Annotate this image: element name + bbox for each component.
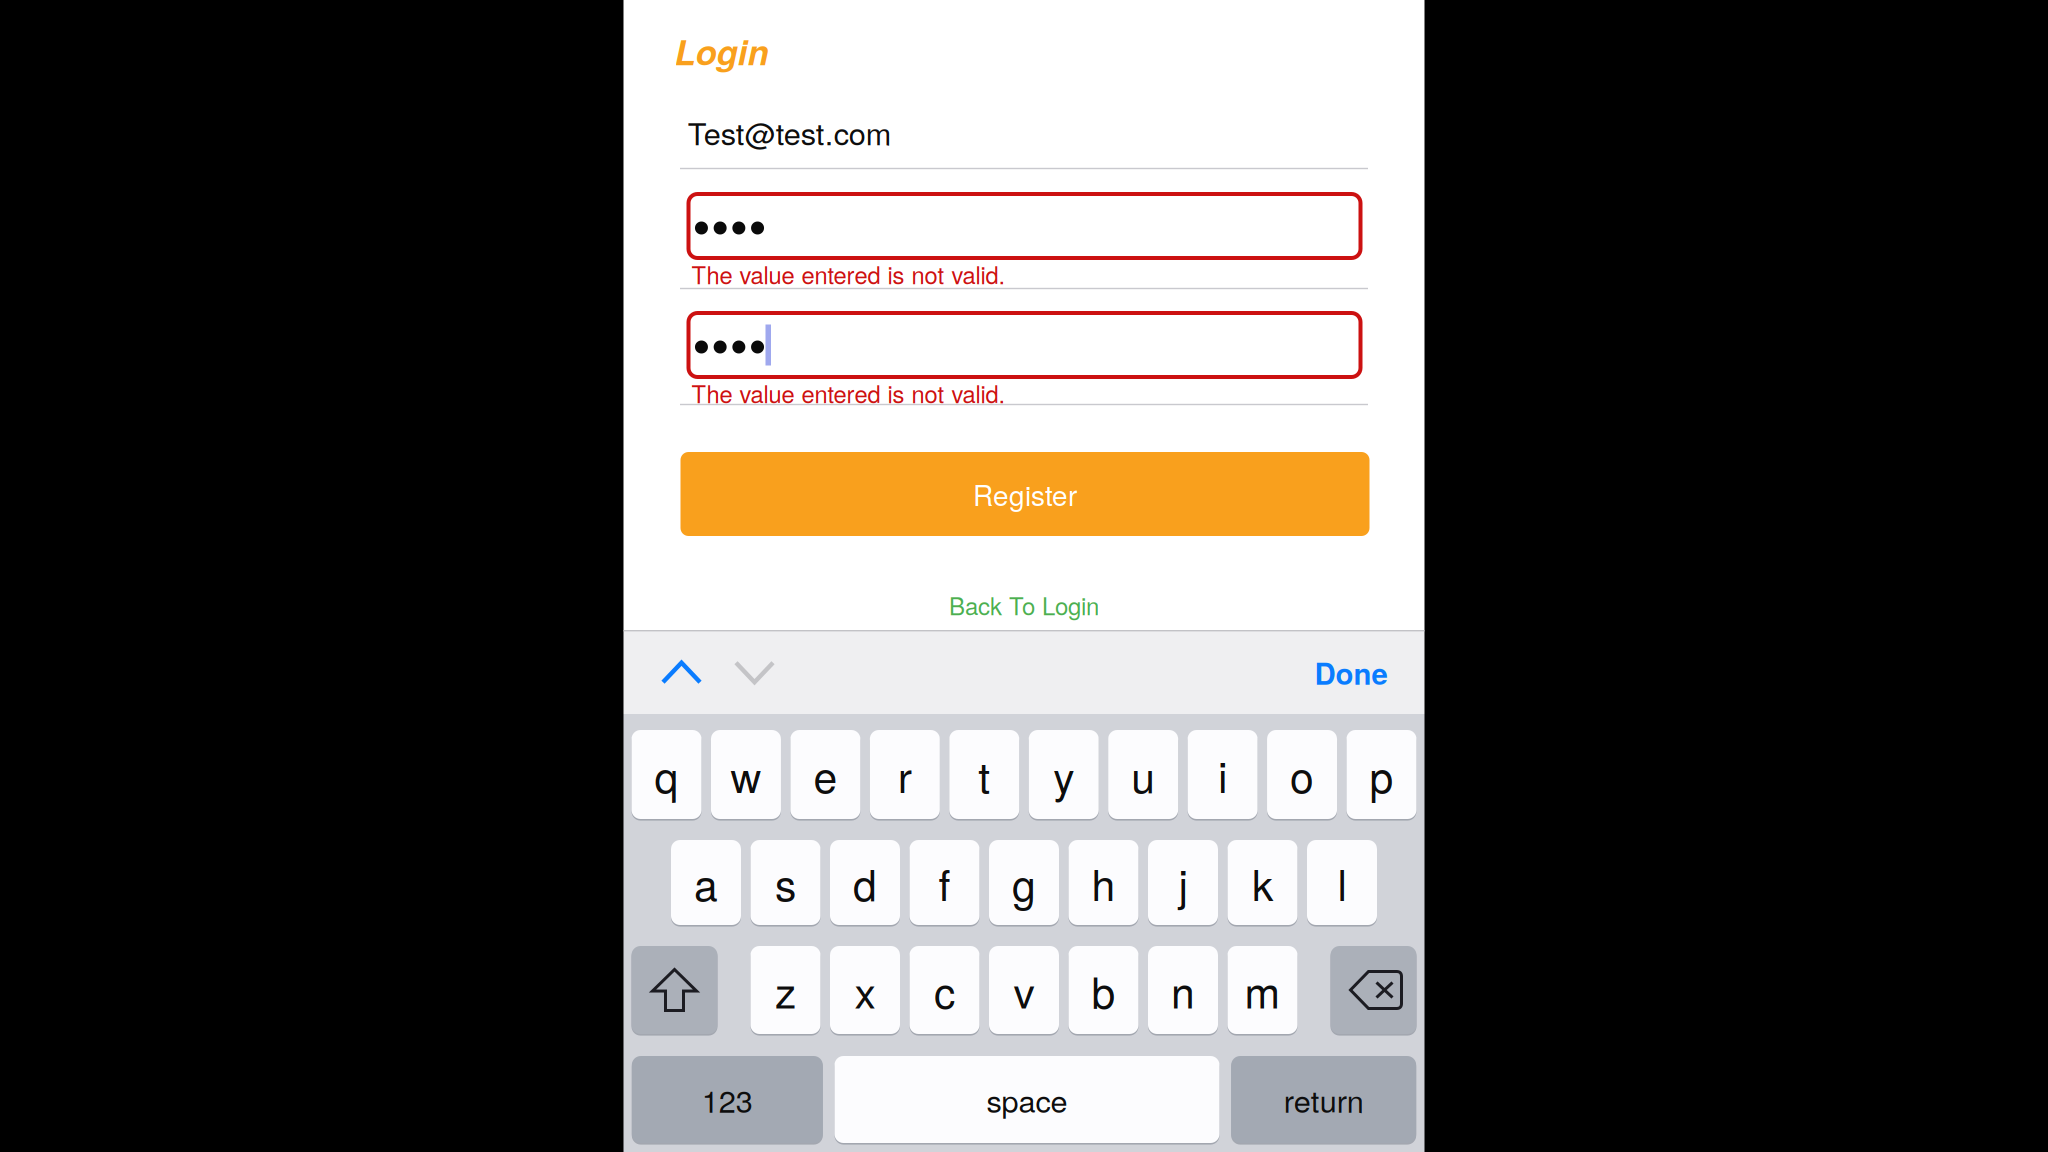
staticText: e [813, 744, 837, 805]
button[interactable]: u [1108, 730, 1178, 819]
button[interactable]: return [1231, 1056, 1416, 1143]
staticText: c [934, 959, 955, 1021]
button[interactable]: v [989, 946, 1059, 1034]
button[interactable]: h [1068, 840, 1138, 925]
staticText: 123 [702, 1077, 753, 1121]
staticText: i [1218, 744, 1227, 805]
staticText: The value entered is not valid. [691, 257, 1005, 291]
button[interactable]: space [834, 1056, 1219, 1143]
staticText: space [986, 1077, 1067, 1121]
button[interactable]: n [1148, 946, 1218, 1034]
staticText: h [1091, 852, 1115, 913]
staticText: v [1013, 959, 1034, 1021]
button[interactable]: w [711, 730, 781, 819]
button[interactable]: 123 [632, 1056, 823, 1143]
staticText: Done [1314, 652, 1387, 694]
button[interactable]: m [1227, 946, 1297, 1034]
staticText: q [654, 744, 678, 805]
button[interactable]: a [671, 840, 741, 925]
staticText: z [775, 959, 796, 1021]
button[interactable]: Email address [672, 110, 1376, 154]
staticText: w [730, 744, 761, 805]
button[interactable]: Back To Login [623, 583, 1424, 627]
staticText: The value entered is not valid. [691, 376, 1005, 410]
button[interactable]: Delete [1330, 946, 1416, 1034]
staticText: Login [674, 26, 768, 76]
staticText: Test@test.com [688, 110, 892, 154]
staticText: n [1171, 959, 1195, 1021]
button[interactable]: Password [688, 194, 1360, 258]
button[interactable]: z [750, 946, 820, 1034]
button[interactable]: t [949, 730, 1019, 819]
staticText: g [1012, 852, 1036, 913]
staticText: o [1290, 744, 1314, 805]
staticText: b [1091, 959, 1115, 1021]
button[interactable]: Confirm password [688, 313, 1360, 377]
button[interactable]: d [830, 840, 900, 925]
button[interactable]: Register [680, 452, 1369, 536]
button[interactable]: s [750, 840, 820, 925]
button[interactable]: p [1346, 730, 1416, 819]
staticText: j [1178, 852, 1187, 913]
button[interactable]: Done [1277, 631, 1424, 714]
staticText: t [978, 744, 990, 805]
button[interactable]: b [1068, 946, 1138, 1034]
staticText: y [1053, 744, 1074, 805]
button[interactable]: e [790, 730, 860, 819]
staticText: a [694, 852, 718, 913]
button[interactable]: Next field [702, 631, 775, 714]
button[interactable]: Previous field [623, 631, 702, 714]
button[interactable]: g [989, 840, 1059, 925]
staticText: x [854, 959, 875, 1021]
button[interactable]: j [1148, 840, 1218, 925]
button[interactable]: c [909, 946, 979, 1034]
button[interactable]: r [870, 730, 940, 819]
staticText: l [1337, 852, 1346, 913]
staticText: p [1369, 744, 1393, 805]
button[interactable]: y [1029, 730, 1099, 819]
button[interactable]: q [631, 730, 701, 819]
staticText: u [1131, 744, 1155, 805]
staticText: k [1252, 852, 1273, 913]
staticText: return [1284, 1077, 1364, 1121]
button[interactable]: f [909, 840, 979, 925]
button[interactable]: l [1307, 840, 1377, 925]
staticText: d [853, 852, 877, 913]
button[interactable]: o [1267, 730, 1337, 819]
staticText: f [938, 852, 950, 913]
button[interactable]: Shift [631, 946, 717, 1034]
staticText: s [775, 852, 796, 913]
staticText: Register [973, 474, 1077, 514]
staticText: Back To Login [949, 588, 1099, 622]
button[interactable]: k [1227, 840, 1297, 925]
staticText: m [1244, 959, 1280, 1021]
staticText: r [898, 744, 912, 805]
button[interactable]: x [830, 946, 900, 1034]
button[interactable]: i [1188, 730, 1258, 819]
